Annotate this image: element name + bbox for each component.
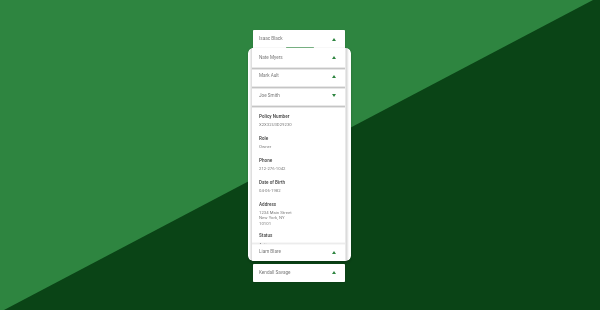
other: Collapse	[332, 75, 336, 78]
staticText: Owner	[259, 144, 272, 149]
staticText: Role	[259, 136, 269, 141]
staticText: 10101	[259, 221, 272, 226]
staticText: Status	[259, 233, 273, 238]
staticText: New York, NY	[259, 215, 285, 220]
other: Collapse	[332, 251, 336, 254]
staticText: Mark Ault	[259, 73, 279, 78]
button[interactable]: Kendall Savage	[253, 264, 345, 282]
staticText: Address	[259, 202, 277, 207]
button[interactable]: Isaac Black	[253, 30, 345, 49]
staticText: 1234 Main Street	[259, 210, 292, 215]
other: Expand	[332, 94, 336, 97]
other: Collapse	[332, 56, 336, 59]
other: Collapse	[332, 271, 336, 274]
staticText: Date of Birth	[259, 180, 286, 185]
staticText: Liam Blare	[259, 249, 281, 254]
staticText: Active	[259, 242, 271, 244]
other: Collapse	[332, 38, 336, 41]
button[interactable]: Liam Blare	[252, 243, 345, 261]
staticText: Policy Number	[259, 114, 290, 119]
staticText: Kendall Savage	[259, 270, 291, 275]
staticText: Joe Smith	[259, 93, 280, 98]
staticText: Phone	[259, 158, 273, 163]
staticText: Nate Myers	[259, 55, 283, 60]
staticText: 212-276-1042	[259, 166, 286, 171]
button[interactable]: Nate Myers	[252, 48, 345, 67]
staticText: 04-06-1982	[259, 188, 281, 193]
staticText: X2X32U3D29230	[259, 122, 292, 127]
button[interactable]: Joe Smith	[252, 86, 345, 105]
staticText: Isaac Black	[259, 36, 283, 41]
button[interactable]: Mark Ault	[252, 67, 345, 86]
